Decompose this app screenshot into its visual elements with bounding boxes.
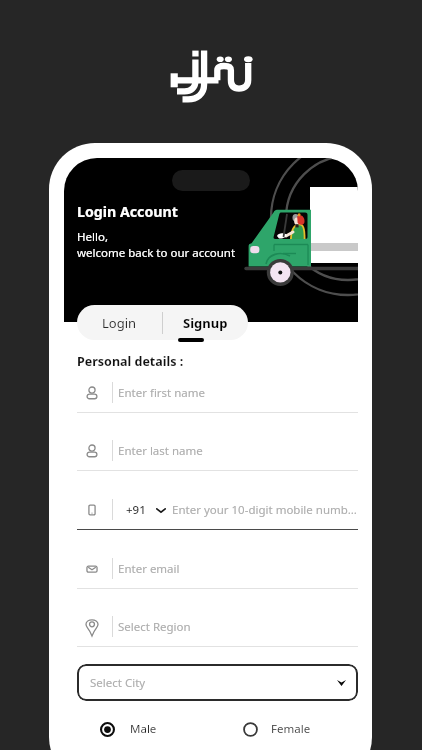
button[interactable]: Enter last name	[77, 431, 358, 470]
staticText: Enter last name	[118, 443, 203, 459]
button[interactable]: Signup	[163, 305, 248, 340]
staticText: Hello,	[77, 229, 108, 245]
staticText: +91	[126, 502, 146, 518]
button[interactable]: Select Region	[77, 607, 358, 646]
staticText: Enter email	[118, 561, 180, 577]
staticText: Select City	[90, 675, 146, 691]
button[interactable]: Male	[100, 718, 157, 740]
button[interactable]: +91	[77, 490, 358, 529]
staticText: Personal details :	[77, 353, 184, 370]
staticText: Login Account	[77, 202, 178, 221]
staticText: Login	[102, 314, 137, 332]
staticText: welcome back to our account	[77, 245, 236, 261]
staticText: Signup	[183, 314, 228, 332]
button[interactable]: Enter email	[77, 549, 358, 588]
button[interactable]: Select City	[77, 664, 358, 701]
button[interactable]: Female	[243, 718, 311, 740]
staticText: Select Region	[118, 619, 191, 635]
staticText: Enter your 10-digit mobile numb…	[172, 502, 357, 518]
button[interactable]: Login	[77, 305, 162, 340]
staticText: Female	[271, 721, 311, 737]
staticText: Enter first name	[118, 385, 205, 401]
staticText: Male	[130, 721, 157, 737]
button[interactable]: Enter first name	[77, 373, 358, 412]
